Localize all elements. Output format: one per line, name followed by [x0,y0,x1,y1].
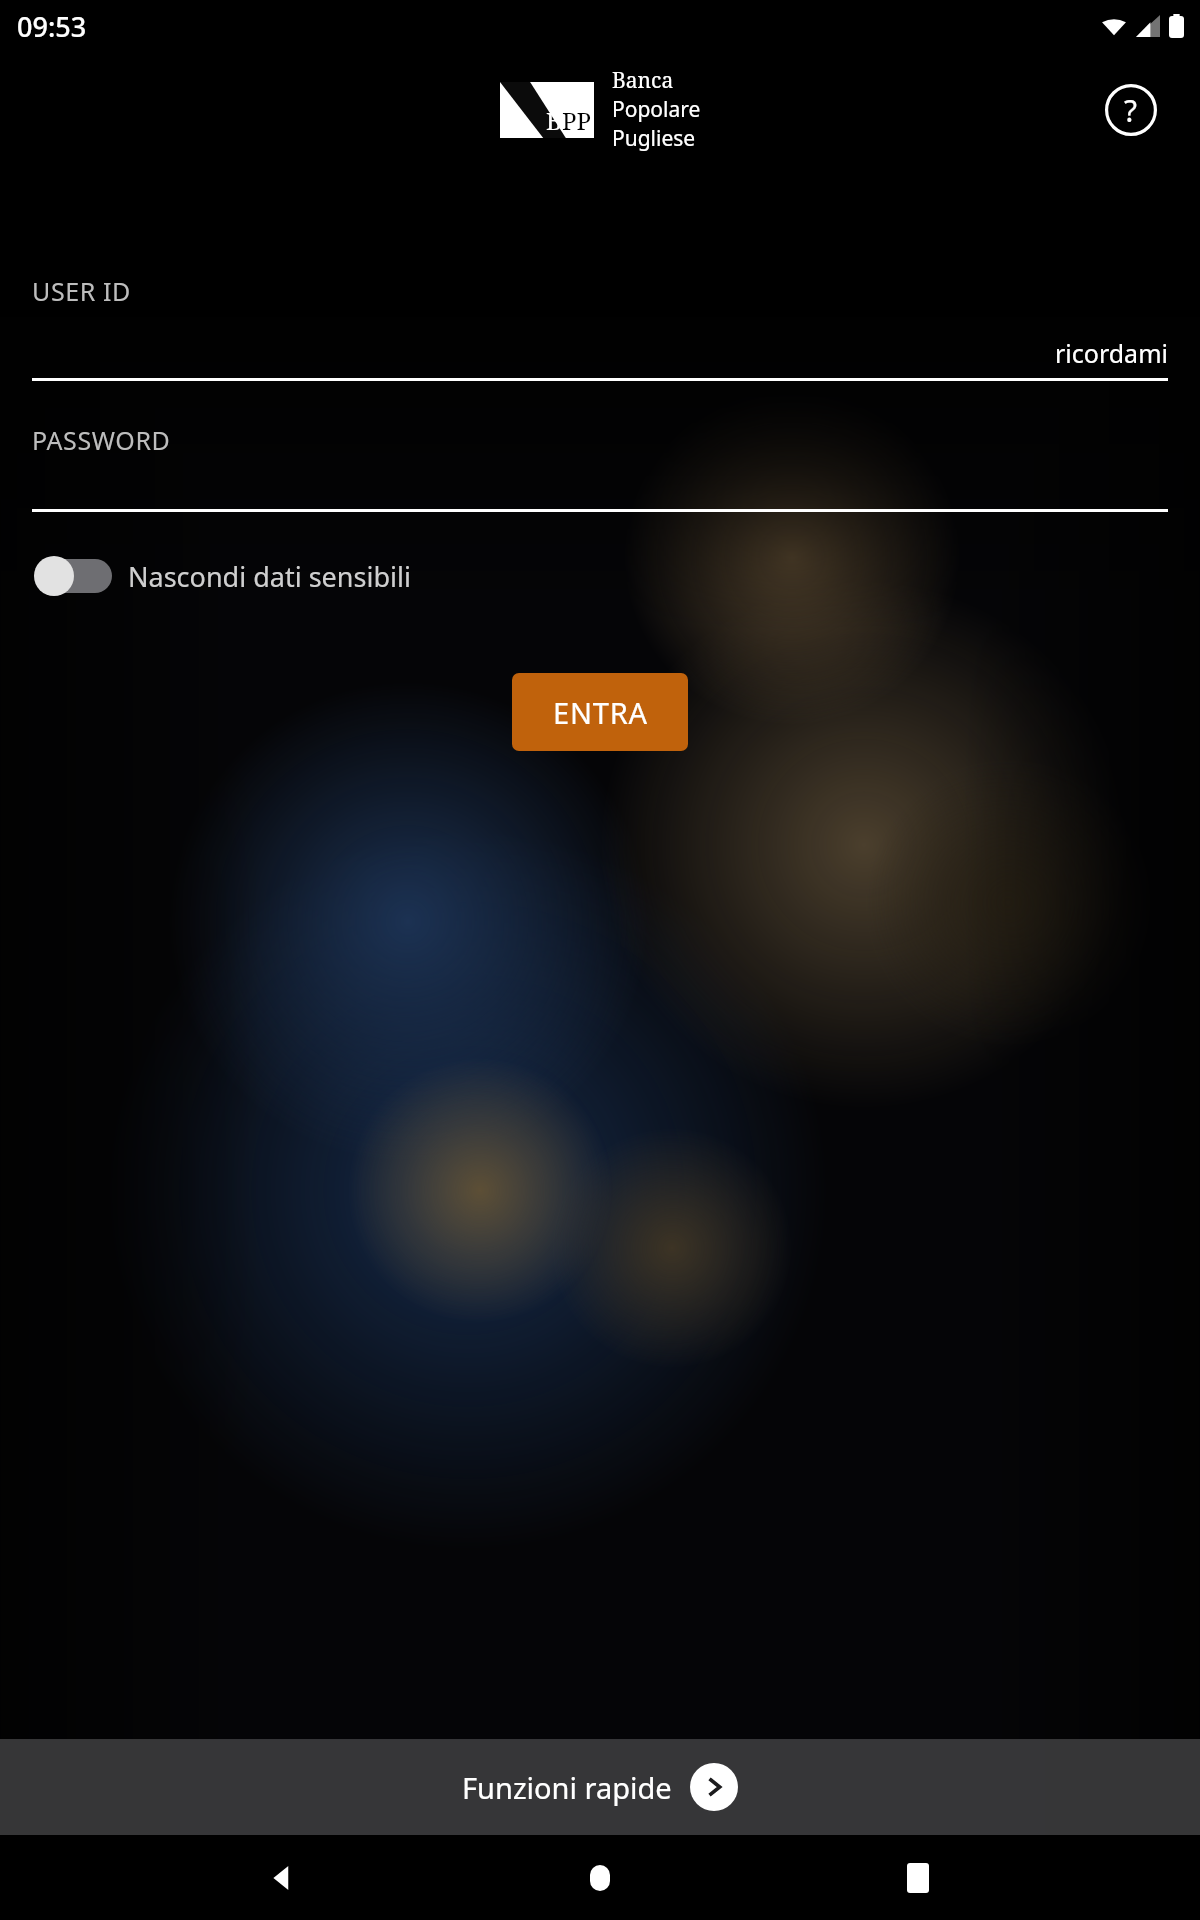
staticText: 09:53 [17,8,87,45]
button[interactable]: Nascondi dati sensibili [32,554,1168,598]
staticText: B [546,104,562,137]
staticText: PP [562,104,591,137]
staticText: PASSWORD [32,423,171,457]
staticText: Pugliese [612,124,696,153]
button[interactable]: Aiuto [1100,79,1162,141]
button[interactable]: ricordami [32,334,1168,372]
staticText: Banca [612,66,674,95]
button[interactable]: Home [565,1843,635,1913]
staticText: Nascondi dati sensibili [128,558,411,595]
staticText: USER ID [32,274,131,308]
button[interactable]: Funzioni rapide [0,1739,1200,1835]
button[interactable]: ENTRA [512,673,688,751]
staticText: ricordami [1055,336,1168,370]
staticText: Funzioni rapide [462,1768,672,1807]
staticText: ENTRA [553,693,648,732]
staticText: Popolare [612,95,701,124]
button[interactable]: Indietro [248,1843,318,1913]
button[interactable]: Panoramica [883,1843,953,1913]
staticText: ? [1124,90,1138,131]
